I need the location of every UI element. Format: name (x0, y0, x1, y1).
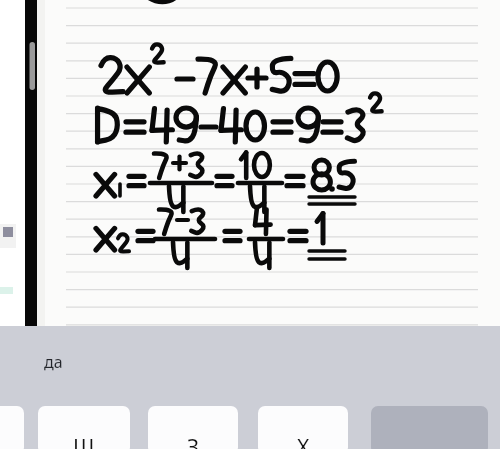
staticText: да (44, 351, 63, 373)
staticText: Х (297, 433, 310, 449)
staticText: Щ (73, 433, 95, 449)
staticText: З (187, 433, 200, 449)
button[interactable]: да (44, 344, 118, 380)
button[interactable]: З (148, 406, 238, 449)
button[interactable]: Х (258, 406, 348, 449)
button[interactable]: Щ (38, 406, 130, 449)
button[interactable]: Key (0, 406, 24, 449)
